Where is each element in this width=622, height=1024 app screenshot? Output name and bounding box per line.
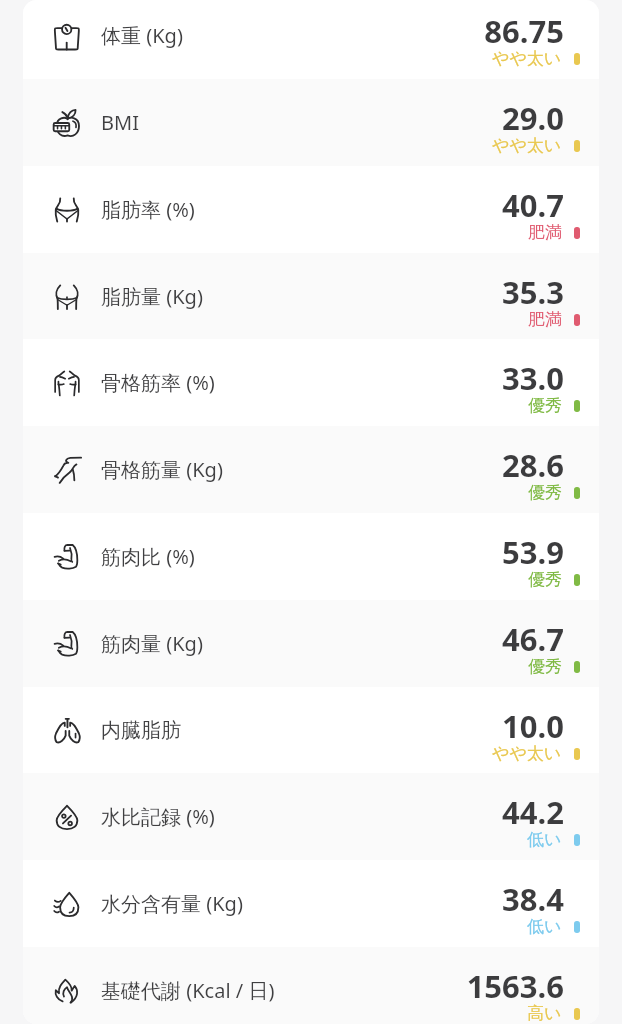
other: 水分含有量 (Kg) [50,887,84,921]
button[interactable]: 筋肉比 (%) [23,513,599,600]
staticText: 1563.6 [466,965,564,1007]
staticText: 35.3 [502,271,564,313]
staticText: 40.7 [502,184,564,226]
staticText: 筋肉比 (%) [101,543,195,570]
staticText: 高い [527,1003,562,1024]
staticText: 優秀 [528,482,562,503]
staticText: やや太い [492,48,562,69]
other: 筋肉量 (Kg) [50,627,84,661]
button[interactable]: 内臓脂肪 [23,687,599,774]
other: 骨格筋量 (Kg) [50,453,84,487]
other: 骨格筋率 (%) [50,366,84,400]
staticText: 脂肪量 (Kg) [101,283,203,310]
other: BMI [50,106,84,140]
button[interactable]: BMI [23,79,599,166]
staticText: 基礎代謝 (Kcal / 日) [101,977,275,1004]
staticText: 骨格筋率 (%) [101,369,215,396]
staticText: 44.2 [502,791,564,833]
button[interactable]: 基礎代謝 (Kcal / 日) [23,947,599,1024]
button[interactable]: 脂肪量 (Kg) [23,253,599,340]
other: 体重 (Kg) [50,19,84,53]
button[interactable]: 脂肪率 (%) [23,166,599,253]
staticText: 肥満 [528,309,562,330]
staticText: 優秀 [528,569,562,590]
staticText: 33.0 [502,357,564,399]
staticText: 筋肉量 (Kg) [101,630,203,657]
staticText: やや太い [492,135,562,156]
other: 筋肉比 (%) [50,540,84,574]
staticText: 46.7 [502,618,564,660]
button[interactable]: 水比記録 (%) [23,773,599,860]
other: 水比記録 (%) [50,800,84,834]
button[interactable]: 筋肉量 (Kg) [23,600,599,687]
staticText: 内臓脂肪 [101,718,181,743]
staticText: やや太い [492,743,562,764]
staticText: 低い [527,916,562,937]
staticText: 水分含有量 (Kg) [101,890,243,917]
staticText: 優秀 [528,395,562,416]
staticText: BMI [101,109,139,136]
staticText: 骨格筋量 (Kg) [101,456,223,483]
staticText: 28.6 [502,444,564,486]
staticText: 水比記録 (%) [101,803,215,830]
other: 基礎代謝 (Kcal / 日) [50,974,84,1008]
staticText: 低い [527,829,562,850]
staticText: 29.0 [502,97,564,139]
button[interactable]: 水分含有量 (Kg) [23,860,599,947]
other: 脂肪率 (%) [50,193,84,227]
button[interactable]: 骨格筋量 (Kg) [23,426,599,513]
button[interactable]: 骨格筋率 (%) [23,339,599,426]
staticText: 体重 (Kg) [101,22,183,49]
staticText: 53.9 [502,531,564,573]
other: 内臓脂肪 [50,714,84,748]
staticText: 10.0 [502,705,564,747]
button[interactable]: 体重 (Kg) [23,0,599,79]
staticText: 肥満 [528,222,562,243]
staticText: 優秀 [528,656,562,677]
staticText: 38.4 [502,878,564,920]
staticText: 脂肪率 (%) [101,196,195,223]
other: 脂肪量 (Kg) [50,280,84,314]
staticText: 86.75 [484,10,564,52]
